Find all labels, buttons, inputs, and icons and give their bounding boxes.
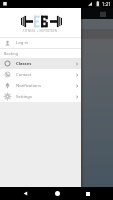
button[interactable]: Calendar [98,9,107,18]
button[interactable]: Settings [0,91,81,102]
button[interactable]: Recent apps [81,187,95,200]
button[interactable]: Notifications [0,80,81,91]
staticText: Classes [16,61,32,67]
button[interactable]: Contact [0,69,81,80]
staticText: 1:21 [102,1,111,7]
button[interactable]: Classes [0,58,81,69]
button[interactable]: Log in [0,38,81,48]
staticText: Contact [16,72,32,78]
staticText: FITNESS + NUTRITION [23,29,58,33]
staticText: Booking [4,51,18,56]
button[interactable]: Home [50,187,64,200]
staticText: Notifications [16,83,41,89]
staticText: Settings [16,94,32,100]
button[interactable]: Back [18,187,32,200]
staticText: Log in [16,40,29,46]
